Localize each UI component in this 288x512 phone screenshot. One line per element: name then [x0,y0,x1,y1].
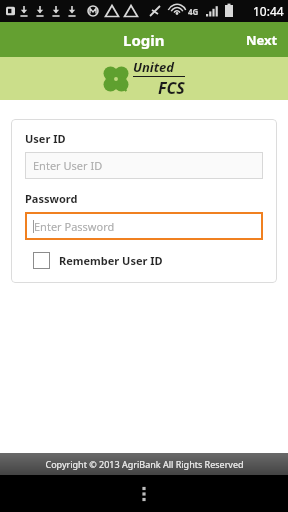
staticText: User ID [25,131,66,146]
button[interactable]: Enter Password [25,212,263,240]
staticText: Remember User ID [59,253,163,268]
staticText: Password [25,191,78,206]
staticText: 10:44 [253,3,284,19]
staticText: United [133,58,175,76]
staticText: Login [123,30,165,50]
button[interactable]: Enter User ID [25,152,263,179]
staticText: Copyright © 2013 AgriBank All Rights Res… [45,458,244,470]
staticText: Enter User ID [33,158,103,173]
button[interactable]: More options [126,476,162,512]
staticText: Enter Password [34,219,115,234]
staticText: Next [246,31,278,49]
button[interactable]: Next [236,25,288,55]
button[interactable]: Remember User ID [25,252,163,269]
staticText: 4G [188,6,199,17]
staticText: FCS [158,77,185,99]
